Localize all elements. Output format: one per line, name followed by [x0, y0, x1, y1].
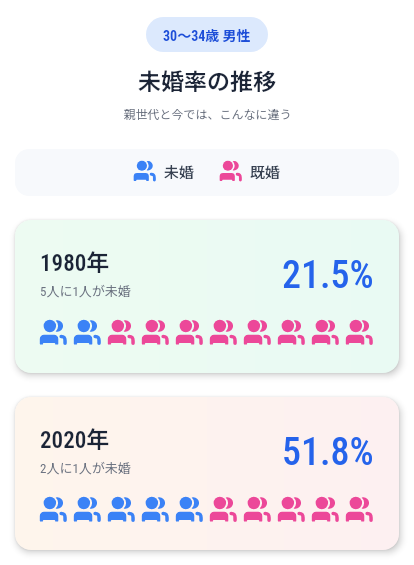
other: 未婚	[73, 496, 101, 524]
staticText: 未婚	[164, 161, 195, 183]
staticText: 2人に1人が未婚	[40, 458, 131, 477]
button[interactable]: 1980年	[15, 220, 399, 373]
staticText: 51.8%	[282, 430, 374, 475]
other: 既婚	[107, 319, 135, 347]
other: 未婚	[39, 496, 67, 524]
other: 既婚	[243, 496, 271, 524]
other: 未婚	[141, 496, 169, 524]
button[interactable]: 30〜34歳 男性	[146, 17, 268, 52]
staticText: 5人に1人が未婚	[40, 281, 131, 300]
other: 未婚	[175, 496, 203, 524]
other: 未婚	[133, 160, 156, 183]
other: 未婚	[39, 319, 67, 347]
button[interactable]: 2020年	[15, 397, 399, 550]
staticText: 21.5%	[282, 253, 374, 298]
button[interactable]: 未婚	[15, 149, 399, 196]
other: 既婚	[311, 319, 339, 347]
other: 既婚	[219, 160, 242, 183]
other: 既婚	[311, 496, 339, 524]
staticText: 30〜34歳 男性	[163, 25, 251, 45]
other: 未婚	[107, 496, 135, 524]
other: 既婚	[209, 319, 237, 347]
other: 既婚	[345, 319, 373, 347]
other: 既婚	[243, 319, 271, 347]
other: 既婚	[277, 496, 305, 524]
staticText: 未婚率の推移	[138, 63, 276, 96]
other: 既婚	[141, 319, 169, 347]
staticText: 1980年	[40, 244, 110, 277]
other: 既婚	[277, 319, 305, 347]
staticText: 既婚	[250, 161, 281, 183]
other: 既婚	[345, 496, 373, 524]
staticText: 親世代と今では、こんなに違う	[123, 105, 292, 122]
other: 未婚	[73, 319, 101, 347]
staticText: 2020年	[40, 421, 110, 454]
other: 既婚	[175, 319, 203, 347]
other: 既婚	[209, 496, 237, 524]
